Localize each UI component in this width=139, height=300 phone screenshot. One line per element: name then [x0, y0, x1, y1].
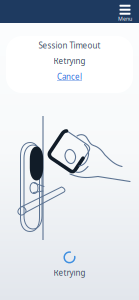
- staticText: Menu: [118, 15, 132, 22]
- staticText: Cancel: [57, 71, 82, 82]
- staticText: Session Timeout: [38, 40, 100, 51]
- button[interactable]: Menu: [118, 1, 139, 22]
- staticText: Retrying: [53, 267, 85, 278]
- staticText: Retrying: [53, 56, 85, 66]
- button[interactable]: Cancel: [57, 71, 82, 82]
